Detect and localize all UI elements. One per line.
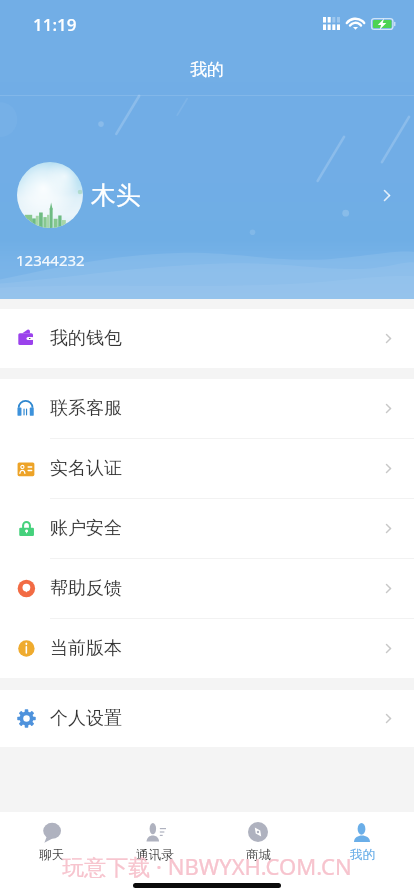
button[interactable]: 联系客服	[0, 379, 414, 439]
button[interactable]: 木头	[17, 162, 390, 228]
staticText: 账户安全	[50, 517, 122, 540]
staticText: 实名认证	[50, 457, 122, 480]
staticText: 木头	[91, 180, 141, 211]
staticText: 玩意下载 · NBWYXH.COM.CN	[62, 851, 352, 881]
staticText: 我的	[350, 847, 375, 863]
staticText: 帮助反馈	[50, 577, 122, 600]
button[interactable]: 实名认证	[0, 439, 414, 499]
button[interactable]: 商城	[206, 816, 310, 867]
staticText: 商城	[246, 847, 271, 863]
button[interactable]: 聊天	[0, 816, 103, 867]
button[interactable]: 帮助反馈	[0, 559, 414, 619]
staticText: 我的	[190, 59, 224, 80]
button[interactable]: 我的钱包	[0, 309, 414, 368]
staticText: 11:19	[33, 13, 77, 36]
button[interactable]: 个人设置	[0, 690, 414, 747]
staticText: 我的钱包	[50, 327, 122, 350]
staticText: 12344232	[16, 250, 85, 270]
button[interactable]: 账户安全	[0, 499, 414, 559]
staticText: 联系客服	[50, 397, 122, 420]
staticText: 通讯录	[136, 847, 174, 863]
staticText: 聊天	[39, 847, 64, 863]
button[interactable]: 我的	[310, 816, 414, 867]
button[interactable]: 当前版本	[0, 619, 414, 678]
staticText: 个人设置	[50, 707, 122, 730]
staticText: 当前版本	[50, 637, 122, 660]
button[interactable]: 通讯录	[103, 816, 206, 867]
